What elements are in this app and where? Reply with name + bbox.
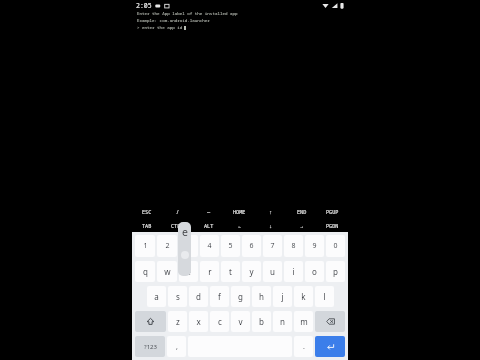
- staticText: PGDN: [326, 222, 339, 229]
- button[interactable]: ↓: [255, 218, 286, 232]
- button[interactable]: 3: [179, 235, 198, 257]
- button[interactable]: 7: [263, 235, 282, 257]
- button[interactable]: CTRL: [162, 218, 193, 232]
- button[interactable]: j: [273, 286, 292, 307]
- staticText: 2: [165, 241, 170, 251]
- button[interactable]: k: [294, 286, 313, 307]
- button[interactable]: z: [168, 311, 187, 332]
- button[interactable]: n: [273, 311, 292, 332]
- button[interactable]: 8: [284, 235, 303, 257]
- staticText: q: [143, 266, 148, 277]
- button[interactable]: HOME: [224, 204, 255, 218]
- staticText: 1: [143, 241, 148, 251]
- button[interactable]: o: [305, 261, 324, 282]
- staticText: Example: com.android.launcher: [137, 18, 210, 24]
- button[interactable]: Enter: [315, 336, 345, 357]
- button[interactable]: TAB: [132, 218, 162, 232]
- button[interactable]: r: [200, 261, 219, 282]
- button[interactable]: 6: [242, 235, 261, 257]
- staticText: m: [300, 316, 308, 327]
- staticText: c: [218, 316, 222, 327]
- button[interactable]: →: [286, 218, 317, 232]
- button[interactable]: p: [326, 261, 345, 282]
- button[interactable]: y: [242, 261, 261, 282]
- button[interactable]: Shift: [135, 311, 166, 332]
- staticText: a: [154, 291, 159, 302]
- button[interactable]: w: [157, 261, 177, 282]
- staticText: TAB: [142, 222, 152, 229]
- staticText: ESC: [142, 208, 152, 215]
- staticText: g: [238, 291, 243, 302]
- button[interactable]: g: [231, 286, 250, 307]
- staticText: n: [280, 316, 285, 327]
- button[interactable]: x: [189, 311, 208, 332]
- staticText: d: [196, 291, 201, 302]
- button[interactable]: 0: [326, 235, 345, 257]
- button[interactable]: Backspace: [315, 311, 345, 332]
- button[interactable]: i: [284, 261, 303, 282]
- staticText: j: [281, 291, 284, 302]
- button[interactable]: v: [231, 311, 250, 332]
- staticText: i: [292, 266, 295, 277]
- button[interactable]: ?123: [135, 336, 165, 357]
- staticText: END: [297, 208, 307, 215]
- button[interactable]: l: [315, 286, 334, 307]
- button[interactable]: ,: [167, 336, 186, 357]
- staticText: /: [176, 208, 180, 215]
- staticText: h: [259, 291, 264, 302]
- staticText: Enter the App label of the installed app: [137, 11, 238, 17]
- button[interactable]: 9: [305, 235, 324, 257]
- button[interactable]: ESC: [132, 204, 162, 218]
- staticText: w: [164, 266, 171, 277]
- button[interactable]: u: [263, 261, 282, 282]
- button[interactable]: —: [193, 204, 224, 218]
- button[interactable]: PGUP: [317, 204, 348, 218]
- button[interactable]: h: [252, 286, 271, 307]
- button[interactable]: s: [168, 286, 187, 307]
- staticText: x: [196, 316, 201, 327]
- button[interactable]: e: [179, 261, 198, 282]
- staticText: r: [208, 266, 212, 277]
- staticText: PGUP: [326, 208, 339, 215]
- staticText: k: [301, 291, 306, 302]
- button[interactable]: 1: [135, 235, 155, 257]
- button[interactable]: 4: [200, 235, 219, 257]
- staticText: 4: [207, 241, 212, 251]
- staticText: .: [303, 342, 305, 352]
- staticText: e: [186, 266, 191, 277]
- staticText: f: [218, 291, 221, 302]
- button[interactable]: PGDN: [317, 218, 348, 232]
- staticText: HOME: [233, 208, 246, 215]
- staticText: y: [249, 266, 254, 277]
- button[interactable]: ALT: [193, 218, 224, 232]
- button[interactable]: ↑: [255, 204, 286, 218]
- staticText: 5: [228, 241, 233, 251]
- staticText: u: [270, 266, 275, 277]
- button[interactable]: ←: [224, 218, 255, 232]
- button[interactable]: /: [162, 204, 193, 218]
- button[interactable]: d: [189, 286, 208, 307]
- button[interactable]: q: [135, 261, 155, 282]
- button[interactable]: b: [252, 311, 271, 332]
- staticText: > enter the app id: [137, 25, 183, 31]
- button[interactable]: t: [221, 261, 240, 282]
- staticText: 0: [333, 241, 338, 251]
- staticText: CTRL: [171, 222, 184, 229]
- staticText: ←: [238, 222, 242, 229]
- staticText: ↑: [269, 208, 273, 215]
- staticText: 7: [270, 241, 275, 251]
- staticText: t: [229, 266, 232, 277]
- button[interactable]: c: [210, 311, 229, 332]
- button[interactable]: m: [294, 311, 313, 332]
- button[interactable]: a: [147, 286, 166, 307]
- button[interactable]: END: [286, 204, 317, 218]
- staticText: 9: [312, 241, 317, 251]
- button[interactable]: 2: [157, 235, 177, 257]
- staticText: ,: [176, 342, 178, 352]
- button[interactable]: 5: [221, 235, 240, 257]
- button[interactable]: .: [294, 336, 313, 357]
- button[interactable]: f: [210, 286, 229, 307]
- staticText: —: [207, 208, 211, 215]
- staticText: o: [312, 266, 317, 277]
